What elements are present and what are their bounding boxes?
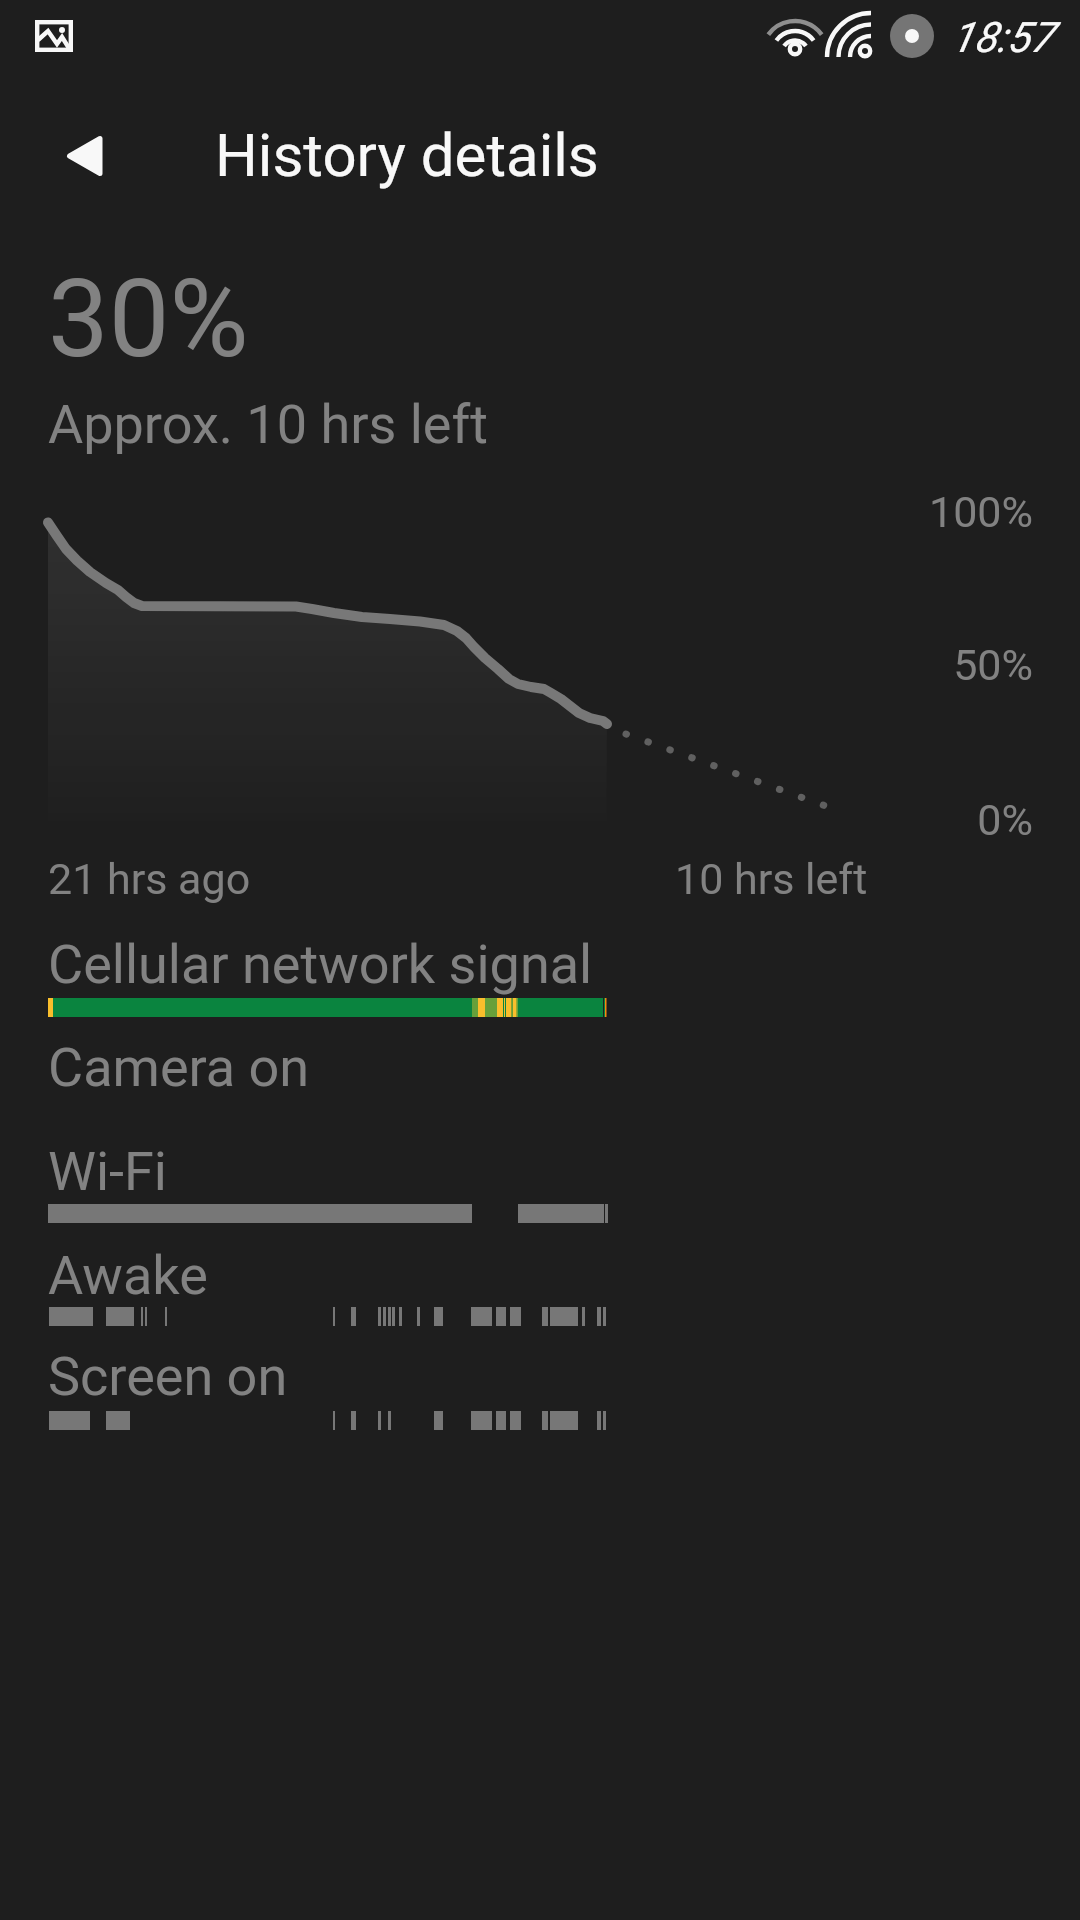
staticText: 100% <box>0 487 1033 537</box>
staticText: Approx. 10 hrs left <box>48 393 488 456</box>
staticText: Wi-Fi <box>48 1140 167 1203</box>
staticText: 21 hrs ago <box>48 854 251 904</box>
staticText: Camera on <box>48 1036 310 1099</box>
staticText: Cellular network signal <box>48 933 593 996</box>
button[interactable] <box>0 920 1080 1024</box>
staticText: 10 hrs left <box>675 854 868 904</box>
button[interactable] <box>0 1024 1080 1128</box>
staticText: Awake <box>48 1244 208 1307</box>
staticText: History details <box>215 120 599 190</box>
staticText: 50% <box>0 640 1033 690</box>
staticText: 30% <box>48 256 249 383</box>
staticText: 0% <box>0 795 1033 845</box>
button[interactable] <box>0 1128 1080 1230</box>
button[interactable] <box>0 1333 1080 1436</box>
staticText: Screen on <box>48 1345 288 1408</box>
button[interactable]: Back <box>48 120 120 192</box>
staticText: 18:57 <box>951 13 1053 62</box>
button[interactable] <box>0 1230 1080 1333</box>
